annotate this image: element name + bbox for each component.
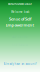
staticText: Welcome back (11, 10, 29, 14)
staticText: Already have an account? (3, 62, 36, 66)
staticText: MINDFULNESS DAILY (7, 2, 32, 6)
staticText: Find Balance (11, 43, 28, 47)
staticText: Empowerment (5, 22, 34, 28)
staticText: Sense of Self (9, 16, 31, 22)
staticText: Take Control (11, 35, 28, 39)
button[interactable]: Already have an account? (3, 62, 36, 66)
